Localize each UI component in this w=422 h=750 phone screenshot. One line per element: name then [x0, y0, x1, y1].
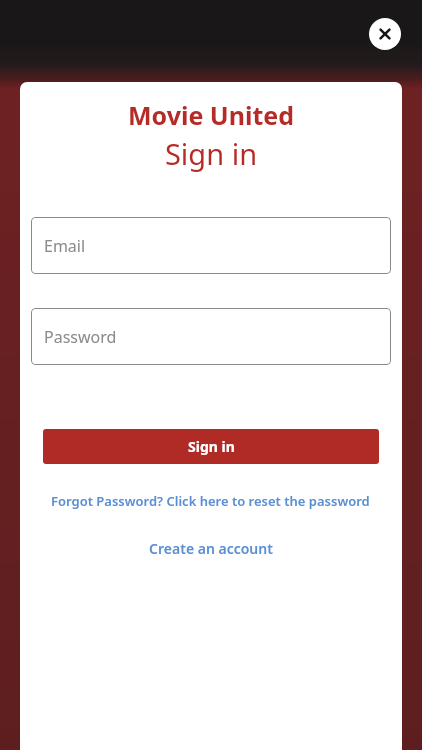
button[interactable]: Forgot Password? Click here to reset the… [51, 492, 371, 510]
staticText: Forgot Password? Click here to reset the… [51, 492, 370, 510]
staticText: Movie United [20, 98, 402, 132]
staticText: Create an account [149, 539, 273, 558]
button[interactable]: Password [31, 308, 391, 365]
button[interactable]: Email [31, 217, 391, 274]
staticText: Password [44, 326, 117, 348]
staticText: Sign in [188, 437, 235, 456]
button[interactable]: Close [369, 18, 401, 50]
staticText: Sign in [20, 134, 402, 173]
button[interactable]: Create an account [20, 539, 402, 558]
button[interactable]: Sign in [43, 429, 379, 464]
staticText: Email [44, 235, 86, 257]
